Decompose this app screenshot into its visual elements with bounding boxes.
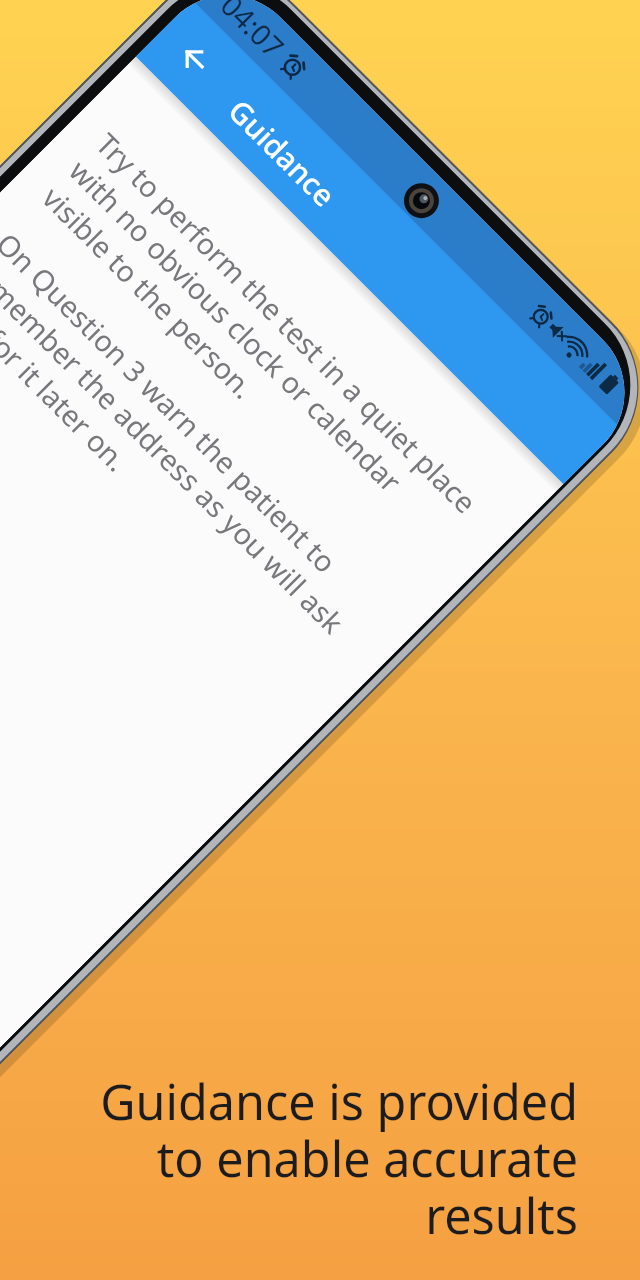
- button[interactable]: [168, 32, 221, 85]
- staticText: 04:07: [213, 0, 293, 66]
- staticText: Guidance: [220, 90, 345, 215]
- staticText: Try to perform the test in a quiet place…: [35, 124, 510, 599]
- staticText: On Question 3 warn the patient to rememb…: [0, 224, 410, 699]
- staticText: Guidance is provided to enable accurate …: [0, 1068, 578, 1248]
